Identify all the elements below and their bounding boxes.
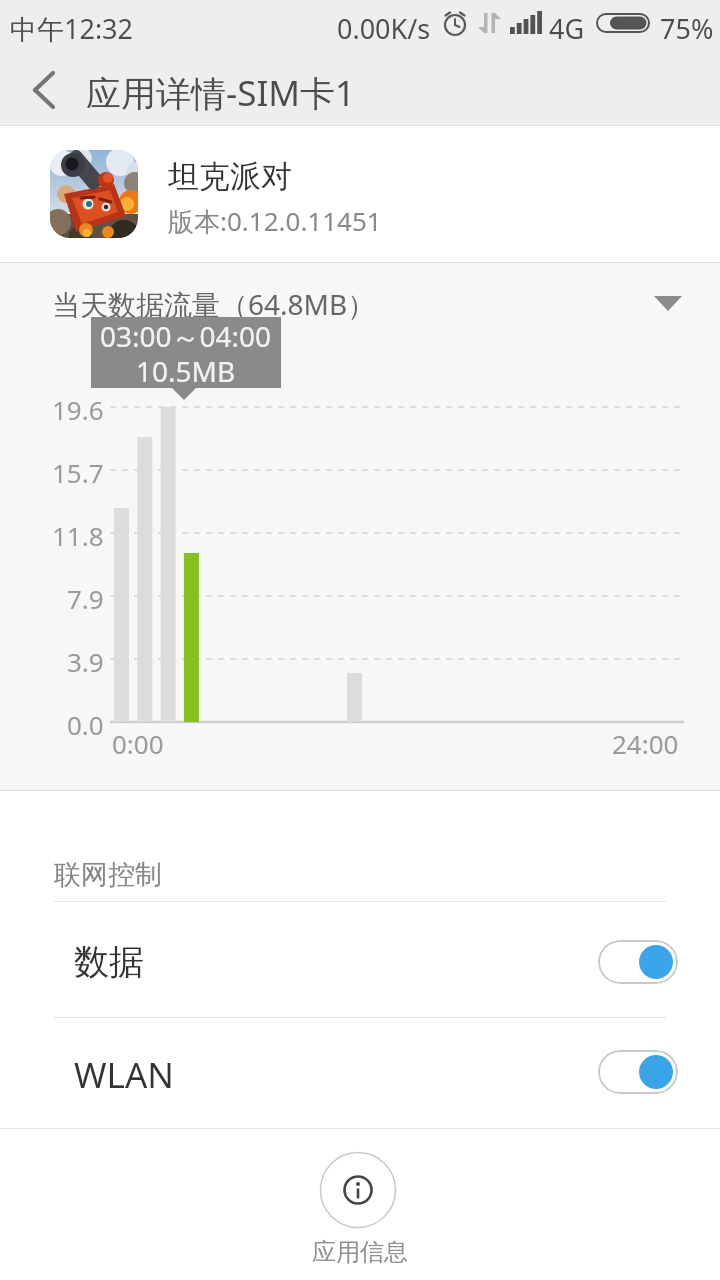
button[interactable]: 当天数据流量（64.8MB） [0,263,720,339]
staticText: 当天数据流量（64.8MB） [52,285,376,323]
button[interactable]: 数据 [0,902,720,1017]
staticText: 7.9 [67,581,104,616]
staticText: 联网控制 [54,858,162,892]
button[interactable]: WLAN [0,1018,720,1128]
staticText: 版本:0.12.0.11451 [168,203,382,239]
staticText: 4G [549,10,585,47]
staticText: 03:00～04:00 [100,317,272,355]
staticText: 0.00K/s [337,10,431,47]
staticText: WLAN [74,1051,174,1099]
staticText: 应用详情-SIM卡1 [86,69,356,117]
staticText: 15.7 [52,455,104,490]
staticText: 11.8 [52,518,104,553]
button[interactable] [598,1050,678,1094]
staticText: 0.0 [67,707,104,742]
button[interactable] [598,940,678,984]
staticText: 10.5MB [136,352,236,390]
button[interactable] [318,1150,398,1230]
staticText: 应用信息 [312,1237,408,1267]
staticText: 中午12:32 [10,10,134,47]
staticText: 19.6 [52,392,104,427]
button[interactable] [16,62,72,118]
staticText: 坦克派对 [168,157,292,196]
staticText: 数据 [74,940,144,984]
staticText: 24:00 [612,726,679,761]
staticText: 75% [660,10,714,47]
staticText: 0:00 [112,726,164,761]
staticText: 3.9 [67,644,104,679]
